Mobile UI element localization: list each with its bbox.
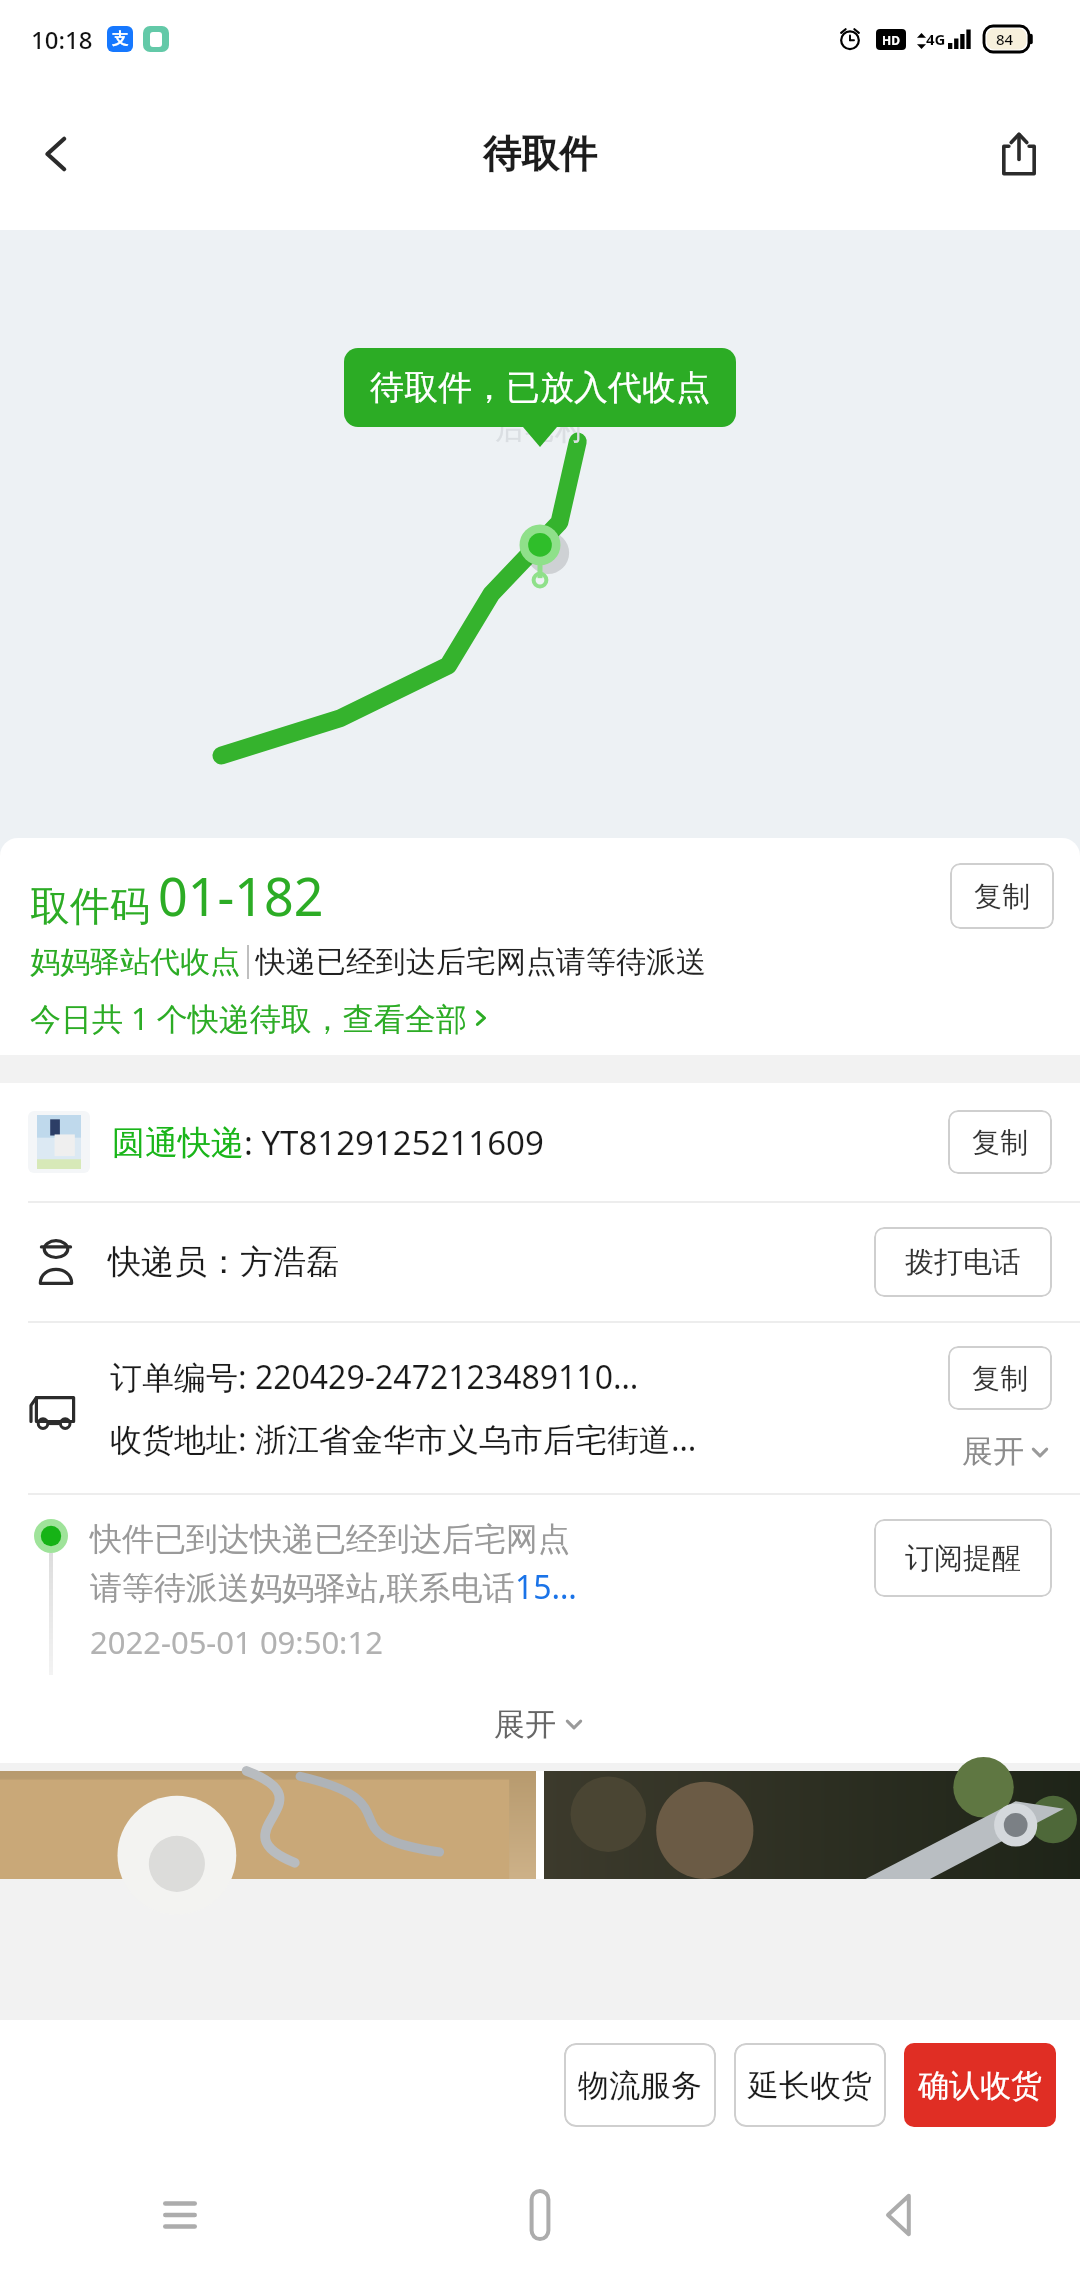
- staticText: 展开: [494, 1705, 556, 1744]
- staticText: 待取件，已放入代收点: [370, 366, 710, 409]
- staticText: 妈妈驿站代收点: [30, 943, 240, 981]
- staticText: 快递员：方浩磊: [108, 1241, 874, 1283]
- button[interactable]: 物流服务: [564, 2043, 716, 2127]
- button[interactable]: 确认收货: [904, 2043, 1056, 2127]
- button[interactable]: 复制: [948, 1346, 1052, 1410]
- button[interactable]: Recent apps: [0, 2150, 360, 2280]
- staticText: 订单编号: 220429-2472123489110…: [110, 1355, 639, 1399]
- staticText: HD: [882, 32, 900, 48]
- staticText: 待取件: [483, 130, 597, 178]
- button[interactable]: 展开: [962, 1432, 1052, 1471]
- staticText: 订阅提醒: [905, 1540, 1021, 1577]
- staticText: 快件已到达快递已经到达后宅网点: [90, 1519, 570, 1559]
- button[interactable]: 待取件，已放入代收点: [344, 348, 736, 427]
- staticText: 确认收货: [918, 2066, 1042, 2105]
- staticText: 圆通快递: [112, 1122, 244, 1164]
- staticText: 今日共 1 个快递待取，查看全部: [30, 997, 467, 1039]
- staticText: 复制: [974, 879, 1030, 914]
- staticText: 10:18: [31, 23, 93, 56]
- staticText: 收货地址: 浙江省金华市义乌市后宅街道…: [110, 1417, 697, 1461]
- button[interactable]: 延长收货: [734, 2043, 886, 2127]
- staticText: 2022-05-01 09:50:12: [90, 1621, 383, 1663]
- button[interactable]: Back: [18, 115, 96, 193]
- staticText: 请等待派送妈妈驿站,联系电话: [90, 1565, 515, 1609]
- button[interactable]: 圆通快递: [0, 1083, 1080, 1201]
- staticText: 复制: [972, 1125, 1028, 1160]
- staticText: 快递已经到达后宅网点请等待派送: [256, 943, 706, 981]
- staticText: 复制: [972, 1361, 1028, 1396]
- button[interactable]: 复制: [950, 863, 1054, 929]
- button[interactable]: Home: [360, 2150, 720, 2280]
- button[interactable]: 订阅提醒: [874, 1519, 1052, 1597]
- button[interactable]: Share: [980, 115, 1058, 193]
- staticText: 物流服务: [578, 2066, 702, 2105]
- button[interactable]: Package photo 1: [0, 1771, 536, 1879]
- staticText: 15…: [515, 1565, 577, 1609]
- staticText: 展开: [962, 1432, 1024, 1471]
- button[interactable]: 复制: [948, 1110, 1052, 1174]
- staticText: : YT8129125211609: [244, 1120, 544, 1165]
- button[interactable]: 今日共 1 个快递待取，查看全部: [30, 997, 491, 1039]
- staticText: 后宅村: [495, 410, 585, 448]
- staticText: 拨打电话: [905, 1244, 1021, 1281]
- button[interactable]: 拨打电话: [874, 1227, 1052, 1297]
- button[interactable]: Package photo 2: [544, 1771, 1080, 1879]
- staticText: 支: [112, 29, 128, 49]
- staticText: 84: [996, 29, 1014, 49]
- button[interactable]: Back: [720, 2150, 1080, 2280]
- staticText: 01-182: [158, 860, 324, 931]
- button[interactable]: 展开: [0, 1685, 1080, 1763]
- button[interactable]: 快递员：方浩磊: [0, 1203, 1080, 1321]
- staticText: 延长收货: [748, 2066, 872, 2105]
- staticText: 4G: [926, 29, 946, 49]
- staticText: 取件码: [30, 881, 150, 931]
